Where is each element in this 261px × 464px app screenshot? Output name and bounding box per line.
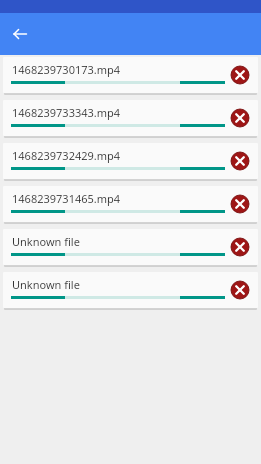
button[interactable]: 1468239731465.mp4 xyxy=(3,186,258,222)
button[interactable]: 1468239733343.mp4 xyxy=(3,100,258,136)
staticText: 1468239731465.mp4 xyxy=(12,191,212,206)
button[interactable]: Unknown file xyxy=(3,272,258,308)
button[interactable]: Cancel download xyxy=(229,150,251,172)
staticText: Unknown file xyxy=(12,234,212,249)
button[interactable]: 1468239732429.mp4 xyxy=(3,143,258,179)
button[interactable]: Cancel download xyxy=(229,64,251,86)
staticText: 1468239732429.mp4 xyxy=(12,148,212,163)
button[interactable]: 1468239730173.mp4 xyxy=(3,57,258,93)
staticText: 1468239730173.mp4 xyxy=(12,62,212,77)
button[interactable]: Back xyxy=(7,21,33,47)
button[interactable]: Unknown file xyxy=(3,229,258,265)
button[interactable]: Cancel download xyxy=(229,193,251,215)
staticText: Unknown file xyxy=(12,277,212,292)
button[interactable]: Cancel download xyxy=(229,236,251,258)
button[interactable]: Cancel download xyxy=(229,107,251,129)
button[interactable]: Cancel download xyxy=(229,279,251,301)
staticText: 1468239733343.mp4 xyxy=(12,105,212,120)
